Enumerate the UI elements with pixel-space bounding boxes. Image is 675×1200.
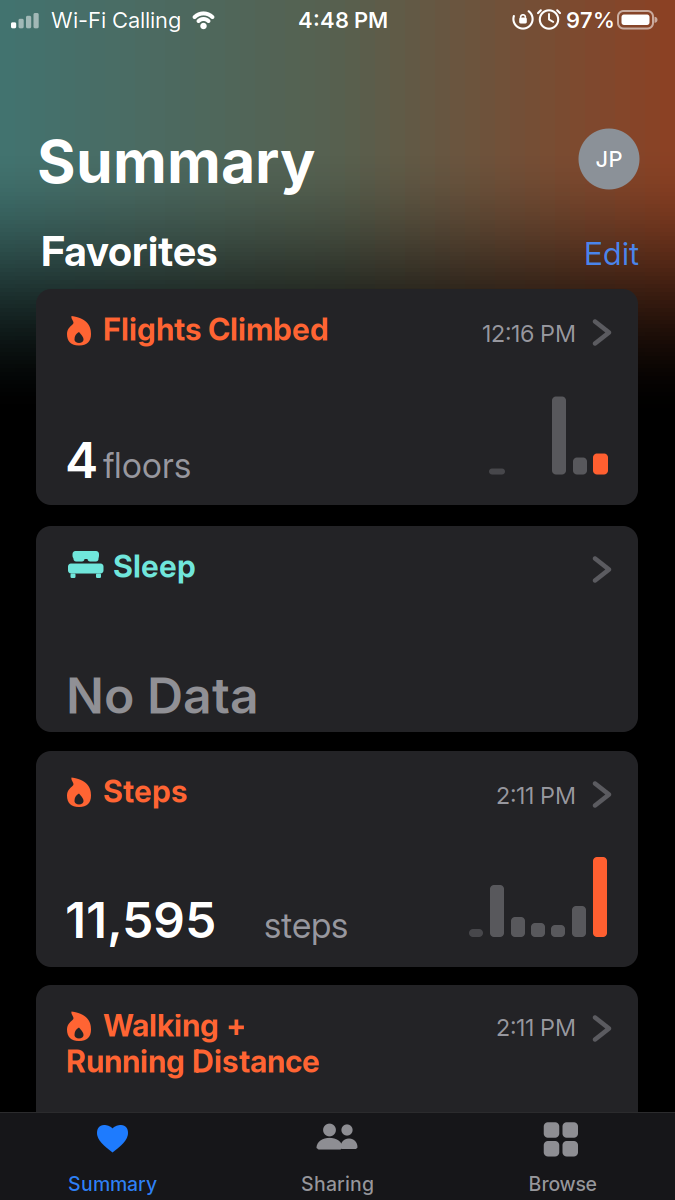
staticText: No Data <box>66 666 259 725</box>
staticText: 11,595 <box>65 890 216 949</box>
staticText: 2:11 PM <box>496 782 576 809</box>
button[interactable]: Walking plus Running Distance <box>36 985 638 1165</box>
staticText: steps <box>264 905 348 946</box>
button[interactable]: Profile <box>578 128 639 189</box>
staticText: Sharing <box>301 1172 374 1195</box>
staticText: JP <box>595 146 622 172</box>
staticText: 4:48 PM <box>298 7 388 33</box>
button[interactable]: Browse <box>450 1112 675 1200</box>
button[interactable]: Sleep <box>36 526 638 732</box>
button[interactable]: Edit <box>584 235 639 272</box>
staticText: Sleep <box>113 548 196 584</box>
staticText: Edit <box>584 235 639 272</box>
staticText: 97% <box>566 7 615 33</box>
button[interactable]: Summary <box>0 1112 225 1200</box>
staticText: floors <box>103 445 191 486</box>
staticText: Browse <box>528 1172 596 1195</box>
button[interactable]: Sharing <box>225 1112 450 1200</box>
staticText: 2:11 PM <box>496 1014 576 1041</box>
staticText: Favorites <box>41 227 217 275</box>
staticText: 12:16 PM <box>482 320 576 347</box>
staticText: Wi-Fi Calling <box>51 7 181 33</box>
button[interactable]: Steps <box>36 751 638 967</box>
staticText: Summary <box>37 127 316 196</box>
button[interactable]: Flights Climbed <box>36 289 638 505</box>
staticText: Running Distance <box>66 1043 320 1079</box>
staticText: Walking + <box>103 1007 246 1043</box>
staticText: 4 <box>65 430 98 489</box>
staticText: Summary <box>68 1172 157 1195</box>
staticText: Steps <box>103 773 187 809</box>
staticText: Flights Climbed <box>103 311 329 347</box>
